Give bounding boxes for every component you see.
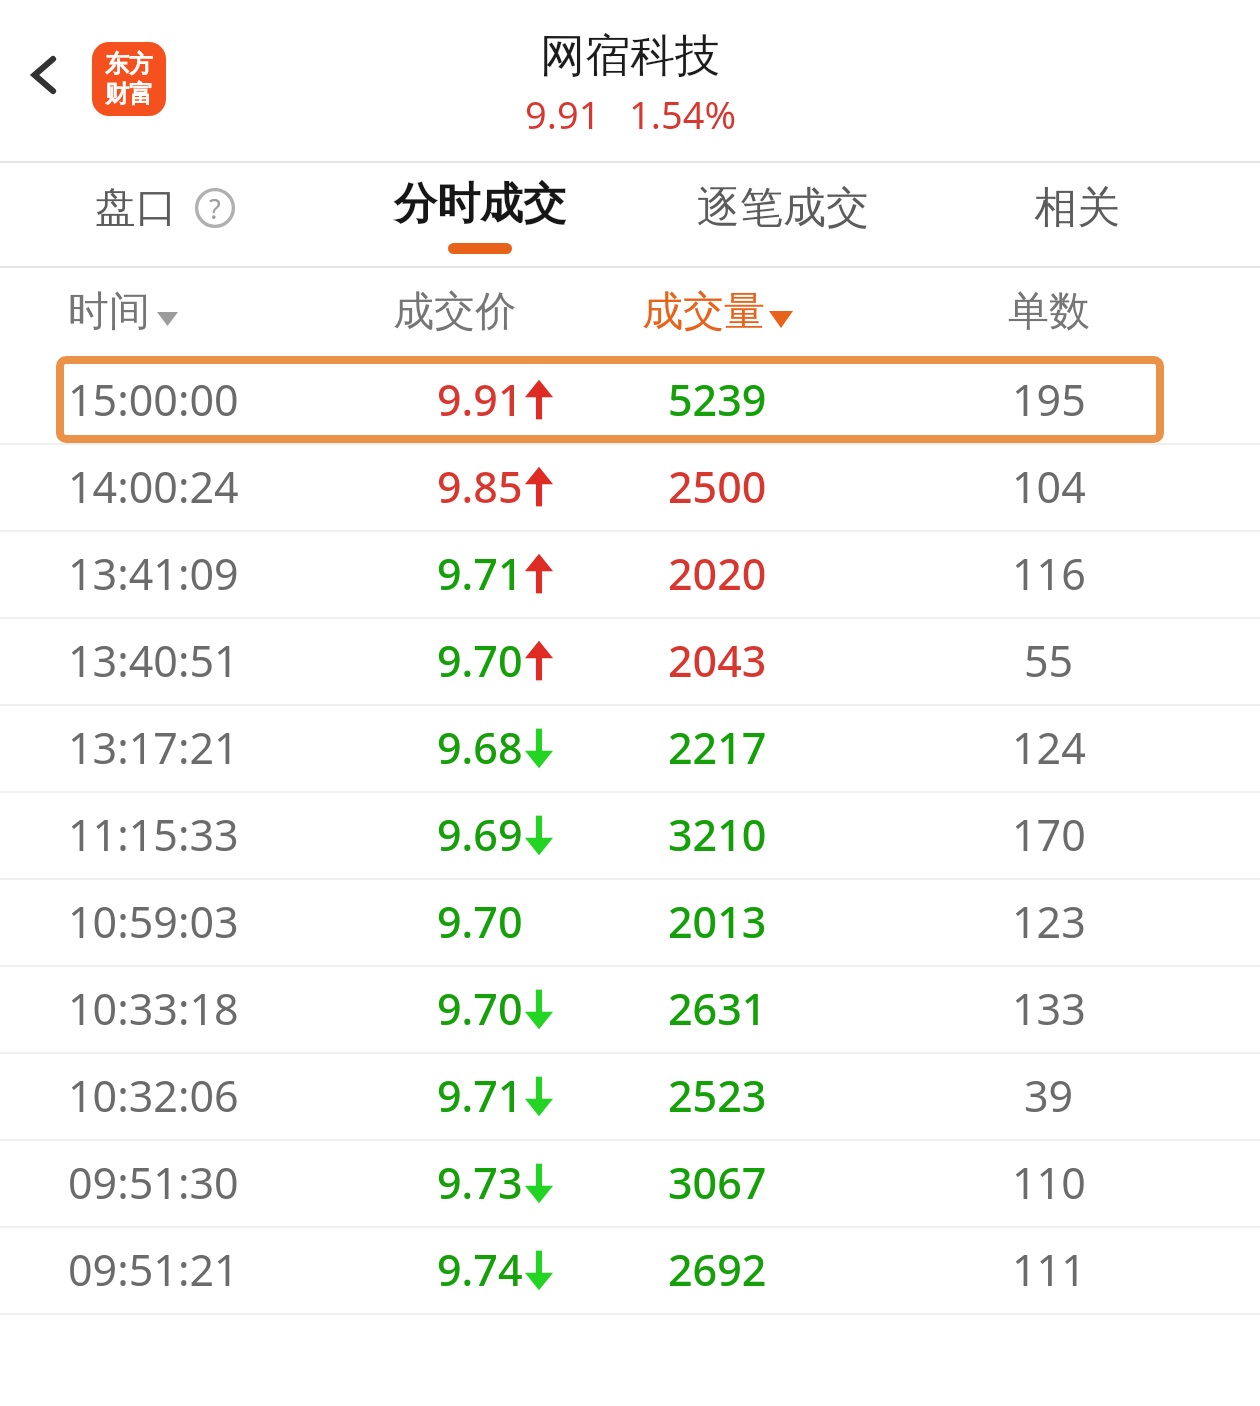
button[interactable]: 09:51:30 <box>0 1139 1260 1226</box>
staticText: 9.85 <box>437 457 523 516</box>
staticText: 10:59:03 <box>68 892 239 951</box>
button[interactable]: 成交价 <box>353 286 555 338</box>
staticText: 13:41:09 <box>68 544 239 603</box>
staticText: 39 <box>1024 1066 1074 1125</box>
staticText: 9.70 <box>437 892 523 951</box>
staticText: 123 <box>1012 892 1086 951</box>
button[interactable]: 10:59:03 <box>0 878 1260 965</box>
staticText: 124 <box>1012 718 1086 777</box>
button[interactable]: 时间 <box>68 286 353 338</box>
staticText: ? <box>209 190 221 227</box>
staticText: 3210 <box>668 805 767 864</box>
button[interactable]: 11:15:33 <box>0 791 1260 878</box>
staticText: 9.91 <box>437 370 523 429</box>
staticText: 逐笔成交 <box>697 181 869 235</box>
staticText: 2500 <box>668 457 767 516</box>
staticText: 1.54% <box>629 88 736 140</box>
staticText: 110 <box>1012 1153 1086 1212</box>
staticText: 133 <box>1012 979 1086 1038</box>
button[interactable]: East Money <box>92 42 166 116</box>
staticText: 13:40:51 <box>68 631 239 690</box>
staticText: 9.71 <box>437 1066 523 1125</box>
button[interactable]: 09:51:21 <box>0 1226 1260 1313</box>
staticText: 2692 <box>668 1240 767 1299</box>
staticText: 10:33:18 <box>68 979 239 1038</box>
staticText: 网宿科技 <box>540 28 720 85</box>
button[interactable]: Back <box>10 40 80 110</box>
staticText: 55 <box>1024 631 1074 690</box>
staticText: 2631 <box>668 979 767 1038</box>
button[interactable]: 分时成交 <box>330 163 630 268</box>
staticText: 170 <box>1012 805 1086 864</box>
staticText: 东方 <box>105 49 153 79</box>
staticText: 111 <box>1012 1240 1086 1299</box>
button[interactable]: 13:40:51 <box>0 617 1260 704</box>
button[interactable]: 13:17:21 <box>0 704 1260 791</box>
button[interactable]: 相关 <box>935 163 1260 268</box>
staticText: 09:51:30 <box>68 1153 239 1212</box>
staticText: 9.71 <box>437 544 523 603</box>
staticText: 9.73 <box>437 1153 523 1212</box>
button[interactable]: 13:41:09 <box>0 530 1260 617</box>
staticText: 时间 <box>68 286 150 338</box>
staticText: 成交量 <box>642 286 765 338</box>
button[interactable]: 逐笔成交 <box>630 163 935 268</box>
staticText: 9.70 <box>437 979 523 1038</box>
staticText: 2217 <box>668 718 767 777</box>
staticText: 116 <box>1012 544 1086 603</box>
button[interactable]: 14:00:24 <box>0 443 1260 530</box>
button[interactable]: 15:00:00 <box>0 356 1260 443</box>
staticText: 2043 <box>668 631 767 690</box>
staticText: 09:51:21 <box>68 1240 239 1299</box>
staticText: 9.70 <box>437 631 523 690</box>
staticText: 9.68 <box>437 718 523 777</box>
button[interactable]: 单数 <box>880 286 1260 338</box>
staticText: 成交价 <box>393 286 516 338</box>
staticText: 分时成交 <box>394 177 566 231</box>
staticText: 10:32:06 <box>68 1066 239 1125</box>
staticText: 13:17:21 <box>68 718 239 777</box>
staticText: 2013 <box>668 892 767 951</box>
staticText: 9.69 <box>437 805 523 864</box>
staticText: 单数 <box>1008 286 1090 338</box>
button[interactable]: 10:32:06 <box>0 1052 1260 1139</box>
staticText: 195 <box>1012 370 1086 429</box>
staticText: 15:00:00 <box>68 370 239 429</box>
staticText: 2523 <box>668 1066 767 1125</box>
staticText: 财富 <box>105 79 153 109</box>
staticText: 9.74 <box>437 1240 523 1299</box>
button[interactable]: 盘口 <box>0 163 330 268</box>
staticText: 盘口 <box>95 182 177 234</box>
button[interactable]: 成交量 <box>555 286 880 338</box>
staticText: 11:15:33 <box>68 805 239 864</box>
staticText: 2020 <box>668 544 767 603</box>
staticText: 5239 <box>668 370 767 429</box>
staticText: 相关 <box>1034 181 1120 235</box>
staticText: 3067 <box>668 1153 767 1212</box>
staticText: 14:00:24 <box>68 457 239 516</box>
button[interactable]: 10:33:18 <box>0 965 1260 1052</box>
staticText: 9.91 <box>525 88 601 140</box>
staticText: 104 <box>1012 457 1086 516</box>
